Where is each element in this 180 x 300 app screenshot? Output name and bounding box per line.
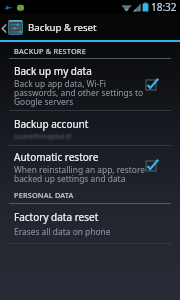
staticText: Back up app data, Wi-Fi: [14, 78, 106, 89]
staticText: somethingelse@gmail.com: [15, 132, 75, 141]
staticText: backed up settings and data: [14, 173, 126, 184]
staticText: somethingelse@gmail.com: [14, 131, 74, 140]
staticText: Backup & reset: [28, 21, 97, 34]
staticText: PERSONAL DATA: [14, 190, 74, 200]
staticText: somethingelse@gmail.com: [15, 131, 75, 140]
staticText: somethingelse@gmail.com: [15, 132, 75, 141]
staticText: somethingelse@gmail.com: [14, 130, 74, 139]
staticText: somethingelse@gmail.com: [15, 131, 75, 140]
staticText: somethingelse@gmail.com: [13, 132, 73, 141]
button[interactable]: [0, 113, 180, 139]
staticText: somethingelse@gmail.com: [13, 132, 73, 141]
staticText: passwords, and other settings to: [14, 87, 144, 98]
button[interactable]: [0, 146, 180, 186]
staticText: somethingelse@gmail.com: [13, 130, 73, 139]
staticText: somethingelse@gmail.com: [13, 132, 73, 141]
staticText: somethingelse@gmail.com: [15, 130, 75, 139]
staticText: Erases all data on phone: [14, 226, 111, 237]
other: Navigate up: [1, 24, 7, 33]
staticText: somethingelse@gmail.com: [15, 130, 75, 139]
staticText: somethingelse@gmail.com: [15, 132, 75, 141]
staticText: somethingelse@gmail.com: [14, 130, 74, 139]
staticText: Automatic restore: [14, 150, 99, 164]
staticText: somethingelse@gmail.com: [15, 130, 75, 139]
staticText: 18:32: [151, 0, 177, 14]
staticText: Backup account: [14, 117, 89, 131]
staticText: somethingelse@gmail.com: [13, 131, 73, 140]
button[interactable]: Toggle setting: [145, 80, 159, 92]
staticText: Back up my data: [14, 64, 92, 78]
staticText: somethingelse@gmail.com: [14, 132, 74, 141]
button[interactable]: Navigate up: [0, 14, 180, 40]
staticText: somethingelse@gmail.com: [14, 132, 74, 141]
staticText: Google servers: [14, 96, 74, 107]
staticText: somethingelse@gmail.com: [13, 130, 73, 139]
button[interactable]: [0, 206, 180, 238]
staticText: somethingelse@gmail.com: [13, 131, 73, 140]
staticText: somethingelse@gmail.com: [15, 132, 75, 141]
staticText: somethingelse@gmail.com: [13, 130, 73, 139]
staticText: BACKUP & RESTORE: [14, 46, 86, 56]
staticText: somethingelse@gmail.com: [13, 130, 73, 139]
button[interactable]: [0, 60, 180, 110]
staticText: somethingelse@gmail.com: [13, 132, 73, 141]
staticText: somethingelse@gmail.com: [15, 130, 75, 139]
button[interactable]: Toggle setting: [145, 161, 159, 173]
staticText: When reinstalling an app, restore: [14, 164, 145, 175]
staticText: Factory data reset: [14, 210, 99, 224]
